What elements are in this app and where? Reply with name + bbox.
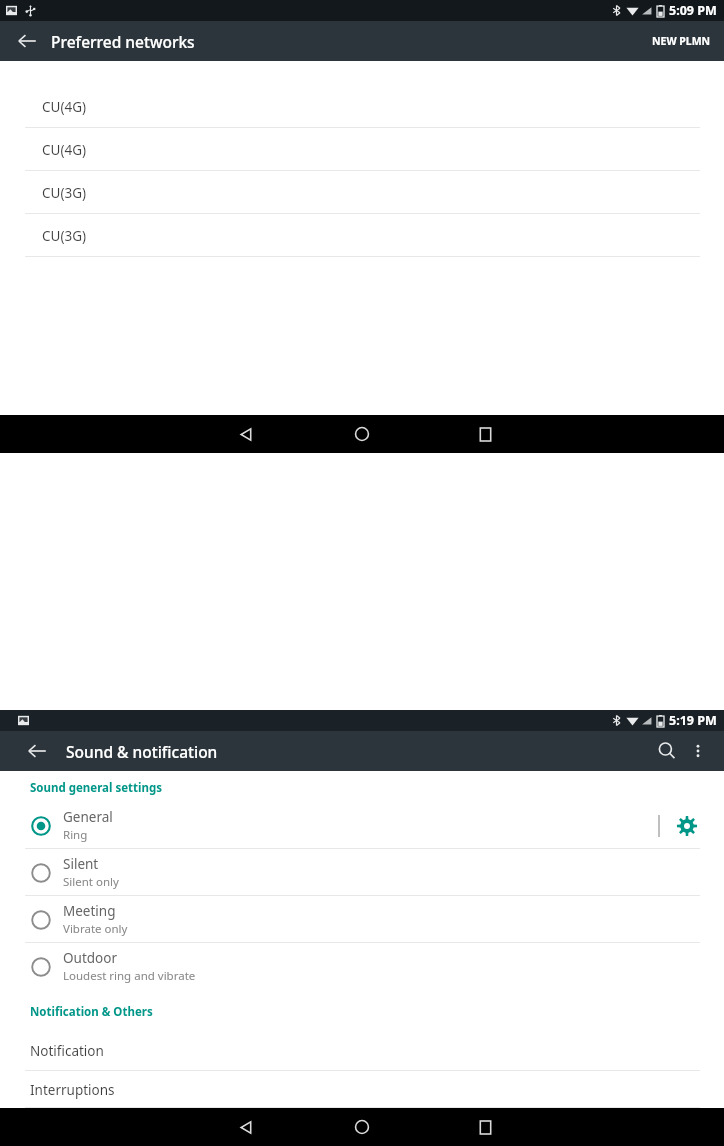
staticText: Sound general settings <box>30 780 162 796</box>
staticText: CU(3G) <box>42 184 87 202</box>
button[interactable]: Meeting <box>0 896 724 943</box>
staticText: CU(4G) <box>42 98 87 116</box>
staticText: Interruptions <box>30 1081 115 1099</box>
staticText: Outdoor <box>63 949 117 967</box>
staticText: Meeting <box>63 902 116 920</box>
button[interactable]: Search <box>652 736 682 766</box>
staticText: CU(3G) <box>42 227 87 245</box>
button[interactable]: General sound settings <box>674 813 700 839</box>
button[interactable]: Recents <box>464 1108 506 1146</box>
button[interactable]: CU(4G) <box>0 128 724 171</box>
button[interactable]: More options <box>684 737 712 765</box>
staticText: General <box>63 808 113 826</box>
button[interactable]: Home <box>341 1108 383 1146</box>
staticText: Silent <box>63 855 99 873</box>
button[interactable]: NEW PLMN <box>647 28 716 54</box>
button[interactable]: Recents <box>464 415 506 453</box>
button[interactable]: CU(3G) <box>0 171 724 214</box>
button[interactable]: CU(4G) <box>0 85 724 128</box>
staticText: Notification <box>30 1042 104 1060</box>
button[interactable]: Back <box>225 415 267 453</box>
staticText: Sound & notification <box>66 741 218 762</box>
staticText: NEW PLMN <box>652 34 711 48</box>
button[interactable]: General <box>0 802 724 849</box>
staticText: Ring <box>63 827 88 843</box>
button[interactable]: Navigate up <box>22 736 52 766</box>
staticText: Vibrate only <box>63 921 128 937</box>
button[interactable]: Silent <box>0 849 724 896</box>
button[interactable]: Back <box>225 1108 267 1146</box>
button[interactable]: Outdoor <box>0 943 724 990</box>
staticText: Notification & Others <box>30 1004 153 1020</box>
staticText: 5:09 PM <box>669 2 717 19</box>
button[interactable]: Navigate up <box>12 26 42 56</box>
staticText: Preferred networks <box>51 31 195 52</box>
button[interactable]: Interruptions <box>0 1071 724 1108</box>
staticText: 5:19 PM <box>669 712 717 729</box>
button[interactable]: Home <box>341 415 383 453</box>
staticText: CU(4G) <box>42 141 87 159</box>
staticText: Loudest ring and vibrate <box>63 968 196 984</box>
staticText: Silent only <box>63 874 119 890</box>
button[interactable]: CU(3G) <box>0 214 724 257</box>
button[interactable]: Notification <box>0 1030 724 1071</box>
